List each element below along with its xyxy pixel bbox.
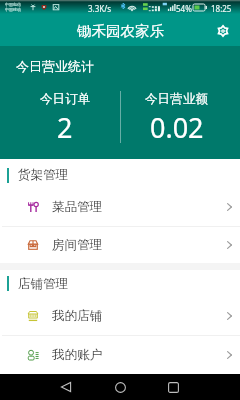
staticText: 中国移动 bbox=[5, 7, 21, 12]
staticText: 锄禾园农家乐 bbox=[77, 22, 164, 40]
staticText: 今日订单 bbox=[40, 91, 91, 107]
staticText: 54% bbox=[176, 3, 192, 14]
staticText: 店铺管理 bbox=[18, 276, 69, 292]
button[interactable]: 菜品管理 bbox=[0, 187, 240, 226]
button[interactable]: Settings bbox=[213, 21, 233, 41]
button[interactable]: Back bbox=[53, 374, 79, 400]
staticText: 菜品管理 bbox=[52, 199, 103, 215]
staticText: 今日营业统计 bbox=[16, 58, 94, 74]
button[interactable]: 我的账户 bbox=[0, 336, 240, 374]
staticText: 2 bbox=[57, 109, 73, 146]
button[interactable]: 我的店铺 bbox=[0, 297, 240, 335]
staticText: 0.02 bbox=[150, 109, 204, 146]
staticText: 中国电信 bbox=[5, 2, 21, 7]
staticText: 18:25 bbox=[211, 3, 232, 14]
button[interactable]: 房间管理 bbox=[0, 227, 240, 263]
staticText: 3.3K/s bbox=[88, 3, 112, 14]
button[interactable]: Recents bbox=[160, 374, 186, 400]
staticText: 我的店铺 bbox=[52, 308, 103, 324]
staticText: 货架管理 bbox=[18, 167, 69, 183]
button[interactable]: Home bbox=[107, 374, 133, 400]
staticText: 今日营业额 bbox=[145, 91, 208, 107]
staticText: 我的账户 bbox=[52, 347, 103, 363]
staticText: 房间管理 bbox=[52, 237, 103, 253]
